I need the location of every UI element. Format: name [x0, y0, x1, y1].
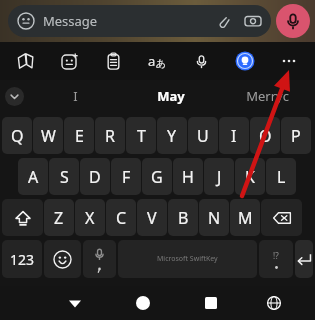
button[interactable]: K — [235, 158, 265, 195]
button[interactable]: Emoji — [8, 5, 271, 37]
button[interactable]: Voice message — [276, 4, 310, 38]
staticText: T — [137, 125, 146, 147]
button[interactable]: Recents — [177, 286, 245, 320]
button[interactable]: A — [18, 158, 48, 195]
button[interactable]: Clipboard — [91, 42, 135, 80]
button[interactable]: P — [281, 117, 311, 154]
staticText: E — [75, 125, 84, 147]
staticText: N — [208, 207, 221, 229]
staticText: あ — [156, 57, 167, 70]
staticText: B — [178, 207, 189, 229]
button[interactable]: R — [95, 117, 125, 154]
staticText: Merryc — [246, 87, 289, 105]
button[interactable]: Home — [109, 286, 177, 320]
button[interactable]: G — [142, 158, 172, 195]
button[interactable]: Emoji — [44, 240, 81, 278]
button[interactable]: Microsoft SwiftKey — [118, 240, 257, 278]
button[interactable]: Z — [44, 199, 74, 236]
staticText: J — [217, 166, 222, 188]
staticText: !? — [273, 250, 279, 261]
button[interactable]: Y — [157, 117, 187, 154]
staticText: K — [245, 166, 255, 188]
staticText: Microsoft SwiftKey — [157, 254, 218, 264]
staticText: A — [28, 166, 39, 188]
staticText: W — [41, 125, 56, 147]
staticText: O — [259, 125, 272, 147]
staticText: G — [151, 166, 163, 188]
staticText: I — [231, 125, 237, 147]
staticText: R — [105, 125, 115, 147]
button[interactable]: S — [49, 158, 79, 195]
button[interactable]: May — [123, 80, 219, 112]
staticText: Y — [167, 125, 177, 147]
staticText: May — [157, 87, 185, 105]
button[interactable]: L — [266, 158, 296, 195]
button[interactable]: Enter — [295, 240, 313, 278]
staticText: Q — [11, 125, 24, 147]
staticText: L — [277, 166, 286, 188]
staticText: V — [147, 207, 157, 229]
button[interactable]: X — [75, 199, 105, 236]
button[interactable]: Merryc — [219, 80, 315, 112]
button[interactable]: Switch keyboard — [245, 286, 303, 320]
button[interactable]: I — [28, 80, 123, 112]
staticText: Z — [54, 207, 64, 229]
button[interactable]: Voice input — [83, 240, 116, 278]
staticText: a — [148, 52, 156, 70]
button[interactable]: C — [106, 199, 136, 236]
other: Camera — [244, 12, 262, 30]
button[interactable]: T — [126, 117, 156, 154]
button[interactable]: Expand — [5, 87, 24, 106]
staticText: X — [85, 207, 95, 229]
other: Attach — [215, 13, 232, 30]
staticText: 123 — [10, 250, 35, 269]
button[interactable]: Translate — [135, 42, 179, 80]
staticText: D — [89, 166, 101, 188]
staticText: U — [197, 125, 209, 147]
button[interactable]: O — [250, 117, 280, 154]
button[interactable]: SwiftKey — [4, 42, 47, 80]
button[interactable]: J — [204, 158, 234, 195]
button[interactable]: N — [199, 199, 229, 236]
button[interactable]: Shift — [2, 199, 43, 236]
button[interactable]: Tips — [223, 42, 267, 80]
button[interactable]: Back — [41, 286, 109, 320]
staticText: P — [291, 125, 301, 147]
button[interactable]: U — [188, 117, 218, 154]
other: Emoji — [17, 12, 35, 30]
button[interactable]: E — [64, 117, 94, 154]
staticText: S — [60, 166, 69, 188]
button[interactable]: H — [173, 158, 203, 195]
staticText: Message — [43, 12, 98, 30]
button[interactable]: M — [230, 199, 260, 236]
button[interactable]: W — [33, 117, 63, 154]
button[interactable]: D — [80, 158, 110, 195]
staticText: I — [73, 87, 78, 105]
button[interactable]: F — [111, 158, 141, 195]
staticText: H — [182, 166, 194, 188]
button[interactable]: More — [267, 42, 311, 80]
button[interactable]: Backspace — [261, 199, 302, 236]
staticText: M — [238, 207, 253, 229]
button[interactable]: Voice — [179, 42, 223, 80]
button[interactable]: Period — [259, 240, 293, 278]
staticText: F — [122, 166, 131, 188]
button[interactable]: Q — [2, 117, 32, 154]
staticText: C — [116, 207, 127, 229]
button[interactable]: Stickers — [47, 42, 91, 80]
button[interactable]: B — [168, 199, 198, 236]
button[interactable]: I — [219, 117, 249, 154]
button[interactable]: 123 — [2, 240, 42, 278]
button[interactable]: V — [137, 199, 167, 236]
